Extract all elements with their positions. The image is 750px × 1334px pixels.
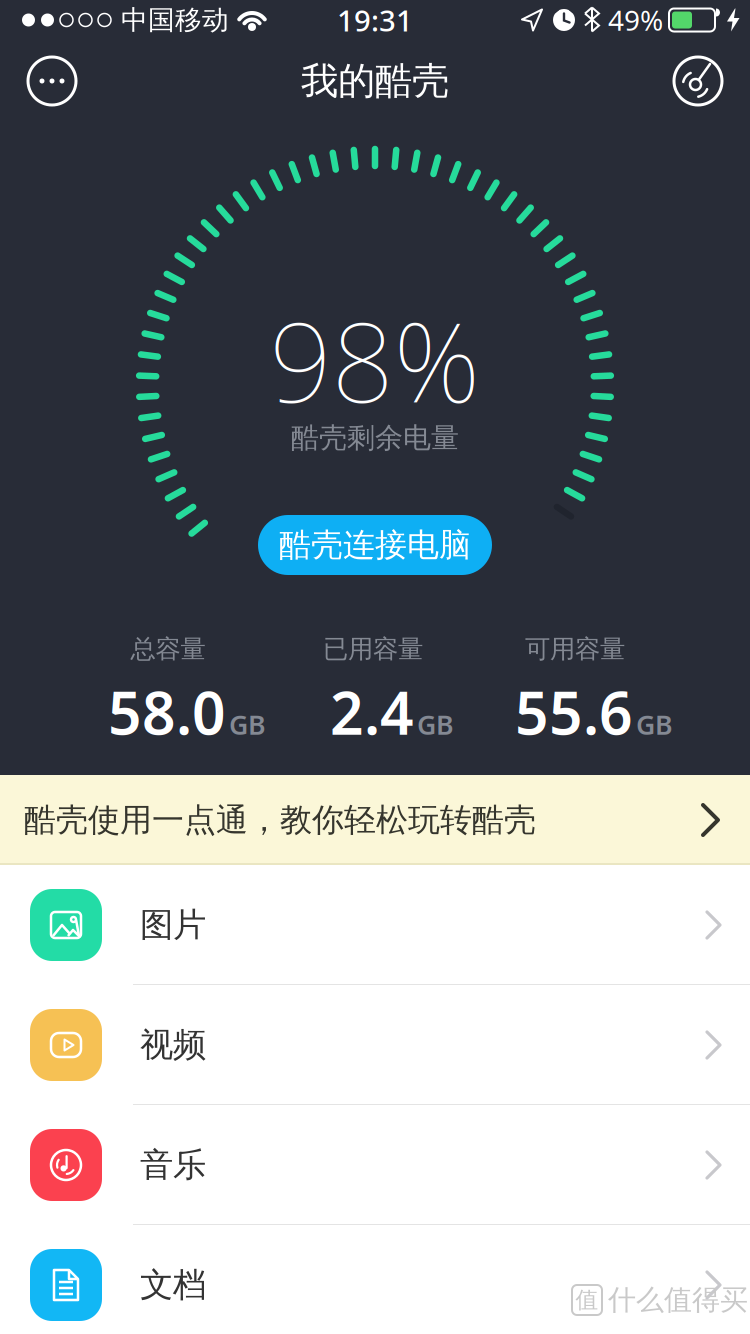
staticText: 什么值得买 (608, 1283, 748, 1317)
staticText: 98% (269, 287, 480, 433)
staticText: GB (229, 707, 266, 742)
staticText: 总容量 (130, 633, 205, 664)
staticText: 2.4 (330, 673, 414, 751)
button[interactable]: 音乐 (0, 1105, 750, 1225)
staticText: 可用容量 (525, 633, 625, 664)
button[interactable]: 文档 (0, 1225, 750, 1334)
staticText: 文档 (140, 1264, 206, 1305)
staticText: GB (636, 707, 673, 742)
staticText: GB (417, 707, 454, 742)
staticText: 值 (575, 1286, 598, 1314)
staticText: 55.6 (515, 673, 633, 751)
staticText: 图片 (140, 904, 206, 945)
staticText: 酷壳剩余电量 (291, 421, 459, 455)
staticText: 酷壳使用一点通，教你轻松玩转酷壳 (24, 800, 536, 840)
button[interactable]: Speed (674, 57, 722, 105)
button[interactable]: 酷壳连接电脑 (258, 515, 492, 575)
staticText: 49% (608, 1, 663, 39)
staticText: 视频 (140, 1024, 206, 1065)
button[interactable]: More (28, 57, 76, 105)
button[interactable]: 视频 (0, 985, 750, 1105)
staticText: 中国移动 (121, 4, 229, 36)
staticText: 19:31 (337, 0, 413, 39)
button[interactable]: 图片 (0, 865, 750, 985)
button[interactable]: 酷壳使用一点通，教你轻松玩转酷壳 (0, 775, 750, 865)
staticText: 我的酷壳 (301, 58, 449, 104)
staticText: 音乐 (140, 1144, 206, 1185)
staticText: 已用容量 (323, 633, 423, 664)
staticText: 58.0 (108, 673, 226, 751)
staticText: 酷壳连接电脑 (279, 525, 471, 565)
